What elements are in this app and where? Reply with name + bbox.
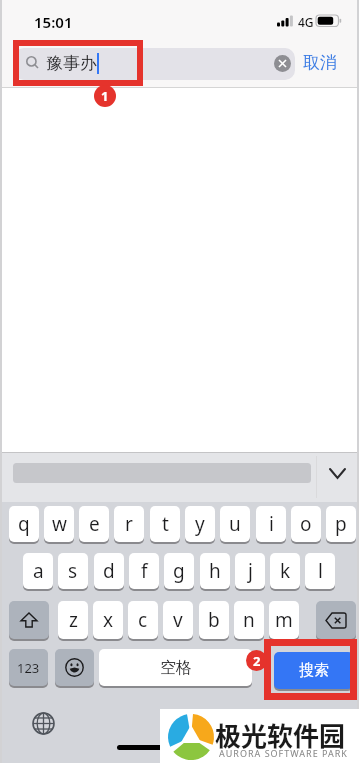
staticText: 取消 <box>303 52 337 73</box>
button[interactable]: t <box>150 506 180 542</box>
button[interactable]: o <box>291 506 321 542</box>
staticText: 空格 <box>160 658 192 678</box>
button[interactable]: c <box>128 601 158 639</box>
button[interactable]: 取消 <box>303 52 337 73</box>
staticText: d <box>103 558 115 584</box>
button[interactable]: z <box>58 601 88 639</box>
staticText: j <box>248 558 253 584</box>
staticText: g <box>173 558 185 584</box>
staticText: s <box>68 558 78 584</box>
button[interactable]: 空格 <box>99 649 252 686</box>
button[interactable]: g <box>164 553 194 589</box>
staticText: m <box>275 607 293 633</box>
button[interactable] <box>322 460 352 486</box>
staticText: 豫事办 <box>46 53 97 74</box>
staticText: 4G <box>298 14 314 30</box>
button[interactable]: q <box>9 506 39 542</box>
button[interactable]: j <box>235 553 265 589</box>
staticText: z <box>69 607 78 633</box>
button[interactable]: p <box>326 506 356 542</box>
button[interactable]: x <box>93 601 123 639</box>
button[interactable]: l <box>305 553 335 589</box>
staticText: AURORA SOFTWARE PARK <box>219 747 348 759</box>
button[interactable]: h <box>200 553 230 589</box>
button[interactable] <box>9 601 49 639</box>
button[interactable] <box>274 55 291 72</box>
button[interactable]: a <box>23 553 53 589</box>
staticText: f <box>141 558 148 584</box>
staticText: r <box>125 511 133 537</box>
staticText: n <box>243 607 255 633</box>
staticText: l <box>318 558 323 584</box>
button[interactable]: y <box>185 506 215 542</box>
button[interactable] <box>30 710 56 736</box>
button[interactable] <box>316 601 356 639</box>
button[interactable]: d <box>94 553 124 589</box>
button[interactable]: b <box>199 601 229 639</box>
staticText: a <box>33 558 44 584</box>
button[interactable] <box>14 48 295 80</box>
staticText: 123 <box>17 659 40 677</box>
staticText: 1 <box>101 87 109 105</box>
button[interactable] <box>55 649 94 686</box>
button[interactable]: v <box>163 601 193 639</box>
staticText: 搜索 <box>299 661 329 680</box>
button[interactable]: r <box>114 506 144 542</box>
button[interactable]: e <box>79 506 109 542</box>
staticText: c <box>138 607 148 633</box>
button[interactable]: m <box>269 601 299 639</box>
button[interactable]: k <box>270 553 300 589</box>
staticText: b <box>208 607 220 633</box>
button[interactable]: 123 <box>9 649 48 686</box>
staticText: k <box>280 558 291 584</box>
button[interactable]: f <box>129 553 159 589</box>
button[interactable]: i <box>256 506 286 542</box>
staticText: o <box>300 511 312 537</box>
button[interactable]: u <box>220 506 250 542</box>
staticText: t <box>162 511 169 537</box>
staticText: 极光软件园 <box>215 716 346 754</box>
button[interactable]: s <box>58 553 88 589</box>
button[interactable]: w <box>44 506 74 542</box>
button[interactable]: 搜索 <box>274 652 353 689</box>
staticText: 15:01 <box>34 12 73 32</box>
staticText: v <box>173 607 183 633</box>
staticText: p <box>335 511 347 537</box>
staticText: i <box>269 511 274 537</box>
staticText: q <box>18 511 30 537</box>
staticText: e <box>89 511 100 537</box>
staticText: 2 <box>253 652 261 670</box>
staticText: u <box>229 511 241 537</box>
staticText: x <box>103 607 114 633</box>
staticText: w <box>52 511 67 537</box>
staticText: h <box>209 558 221 584</box>
staticText: y <box>195 511 205 537</box>
button[interactable]: n <box>234 601 264 639</box>
